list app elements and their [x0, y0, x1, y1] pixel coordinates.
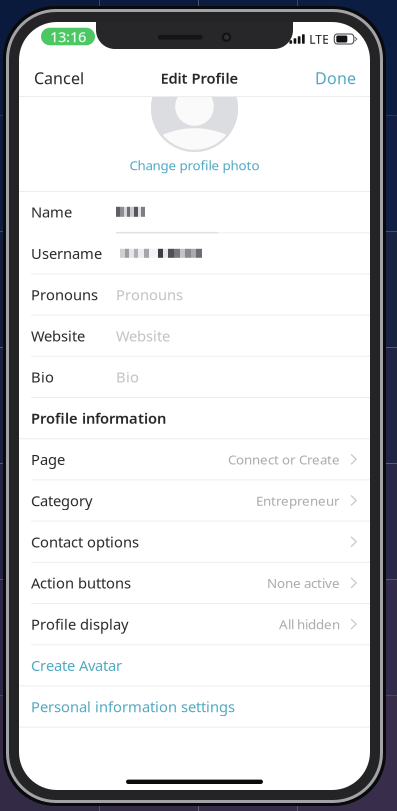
staticText: Change profile photo	[129, 156, 259, 174]
button[interactable]: Page	[19, 439, 370, 480]
button[interactable]: Profile display	[19, 604, 370, 645]
button[interactable]: Cancel	[34, 56, 84, 100]
staticText: Profile information	[31, 408, 166, 428]
staticText: Profile display	[31, 614, 128, 634]
staticText: Website	[116, 326, 170, 345]
staticText: Pronouns	[31, 285, 98, 304]
staticText: LTE	[309, 31, 329, 47]
staticText: Personal information settings	[31, 697, 235, 716]
staticText: Category	[31, 491, 92, 510]
staticText: None active	[267, 574, 340, 592]
staticText: Create Avatar	[31, 656, 122, 675]
staticText: Done	[315, 67, 356, 89]
staticText: Connect or Create	[228, 450, 340, 468]
staticText: Cancel	[34, 67, 84, 89]
staticText: Page	[31, 450, 65, 469]
button[interactable]: Done	[315, 56, 356, 100]
staticText: Action buttons	[31, 573, 131, 593]
staticText: Pronouns	[116, 285, 183, 304]
staticText: Contact options	[31, 532, 139, 551]
button[interactable]: Contact options	[19, 522, 370, 563]
staticText: Website	[31, 326, 85, 345]
staticText: Name	[31, 202, 72, 222]
staticText: Bio	[31, 367, 54, 387]
button[interactable]: Action buttons	[19, 563, 370, 604]
staticText: Entrepreneur	[256, 492, 340, 509]
button[interactable]: Personal information settings	[19, 686, 370, 728]
button[interactable]: Change profile photo	[129, 151, 259, 179]
staticText: Edit Profile	[160, 68, 238, 88]
staticText: All hidden	[279, 615, 340, 633]
staticText: Bio	[116, 367, 139, 387]
button[interactable]: Category	[19, 480, 370, 522]
button[interactable]: Create Avatar	[19, 645, 370, 686]
staticText: Username	[31, 244, 102, 263]
staticText: 13:16	[50, 27, 86, 46]
